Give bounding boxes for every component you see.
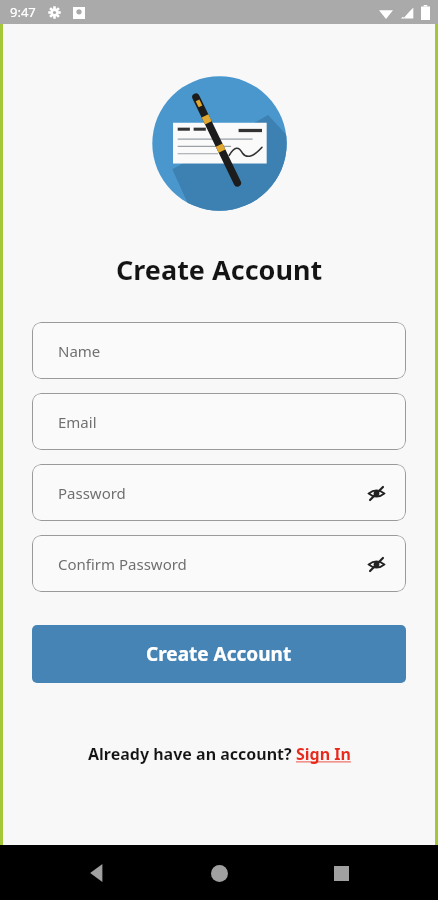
staticText: Email	[58, 412, 97, 432]
staticText: Already have an account?	[88, 743, 296, 765]
button[interactable]: Create Account	[32, 625, 406, 683]
staticText: Confirm Password	[58, 554, 187, 574]
staticText: Name	[58, 341, 101, 361]
button[interactable]: Confirm Password	[32, 535, 406, 592]
button[interactable]: Email	[32, 393, 406, 450]
staticText: Password	[58, 483, 126, 503]
button[interactable]: Back	[72, 848, 122, 898]
staticText: Sign In	[296, 743, 351, 765]
staticText: 9:47	[10, 3, 36, 21]
button[interactable]: Name	[32, 322, 406, 379]
staticText: Create Account	[116, 251, 323, 288]
button[interactable]: Sign In	[296, 743, 351, 765]
staticText: Create Account	[146, 641, 292, 667]
button[interactable]: Toggle password visibility	[362, 550, 390, 578]
button[interactable]: Password	[32, 464, 406, 521]
button[interactable]: Recent apps	[316, 848, 366, 898]
button[interactable]: Home	[194, 848, 244, 898]
button[interactable]: Toggle password visibility	[362, 479, 390, 507]
